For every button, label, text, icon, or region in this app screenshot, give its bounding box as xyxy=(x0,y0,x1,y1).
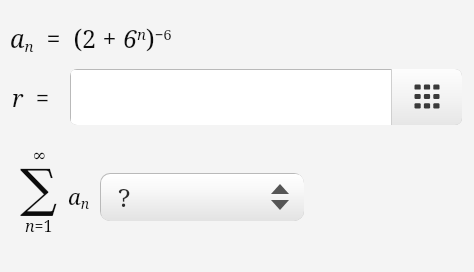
staticText: an xyxy=(68,181,90,213)
staticText: ? xyxy=(118,179,131,214)
button[interactable] xyxy=(70,69,391,125)
staticText: n=1 xyxy=(25,215,53,237)
staticText: ∑ xyxy=(20,158,58,219)
button[interactable]: ? xyxy=(100,173,304,221)
staticText: r = xyxy=(12,81,50,114)
staticText: ∞ xyxy=(32,145,47,165)
button[interactable]: Open keypad xyxy=(392,69,462,125)
staticText: an = (2 + 6n)−6 xyxy=(10,21,172,57)
